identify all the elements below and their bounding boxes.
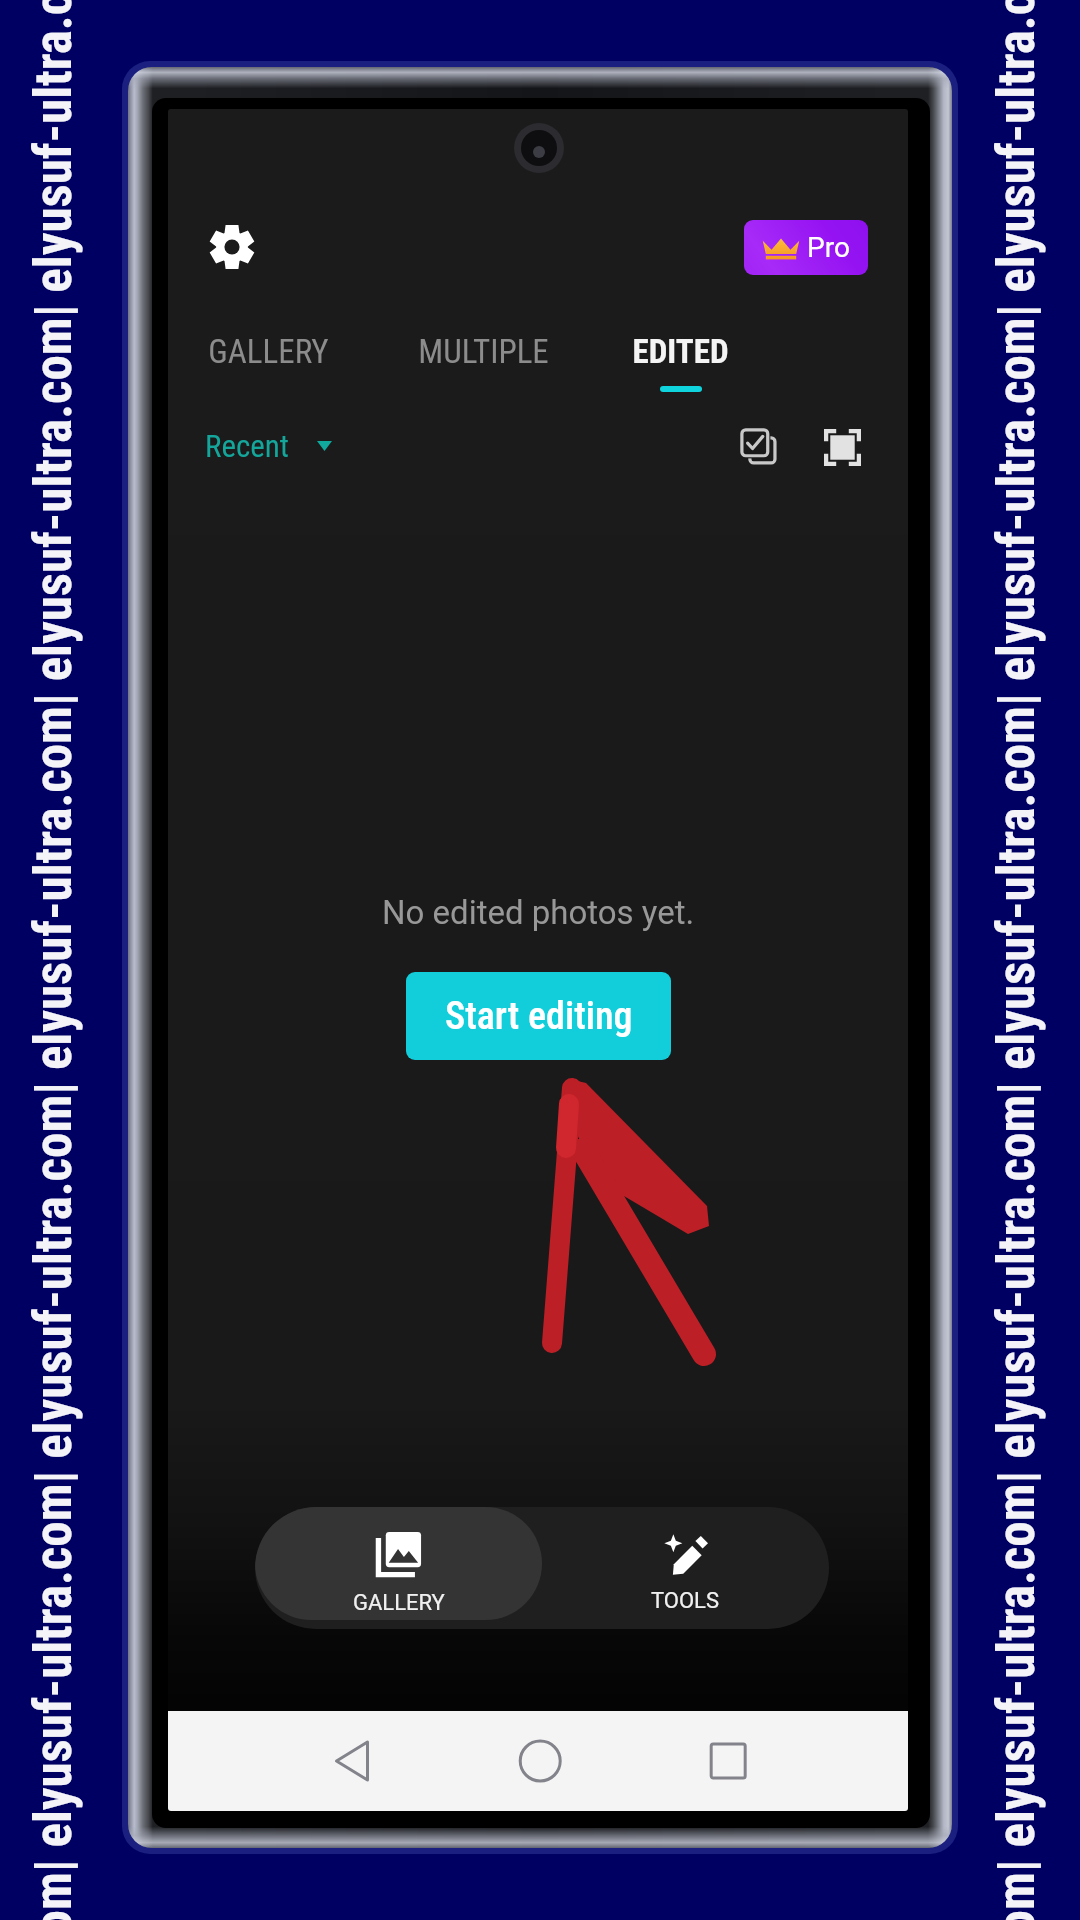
button[interactable]: GALLERY [255, 1507, 542, 1620]
button[interactable]: Start editing [406, 972, 671, 1060]
staticText: GALLERY [208, 332, 329, 371]
staticText: MULTIPLE [418, 332, 549, 371]
staticText: Pro [807, 231, 850, 264]
staticText: TOOLS [651, 1588, 720, 1614]
button[interactable]: GALLERY [173, 332, 363, 422]
button[interactable]: Aspect ratio [814, 419, 870, 475]
button[interactable]: MULTIPLE [388, 332, 578, 422]
button[interactable]: EDITED [585, 332, 775, 422]
button[interactable]: Recent [205, 422, 332, 470]
staticText: Start editing [445, 994, 633, 1039]
staticText: EDITED [632, 332, 729, 371]
staticText: Recent [205, 428, 290, 464]
button[interactable]: Select multiple [731, 419, 787, 475]
button[interactable]: Pro [744, 220, 868, 275]
staticText: GALLERY [353, 1590, 445, 1616]
button[interactable]: Settings [199, 214, 265, 280]
staticText: No edited photos yet. [382, 893, 695, 932]
button[interactable]: TOOLS [542, 1507, 829, 1620]
